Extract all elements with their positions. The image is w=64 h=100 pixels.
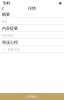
button[interactable]: 内容提要 [0,32,64,39]
staticText: ▮▮ [59,1,61,4]
staticText: 内容提要 [2,34,14,37]
button[interactable]: 概要 [0,11,64,18]
staticText: 9:41 [3,0,10,6]
staticText: 内容提要 [2,26,18,31]
button[interactable]: 简介 [0,18,64,25]
button[interactable]: 一、思路工作 [0,46,64,53]
button[interactable]: Back [0,6,6,11]
button[interactable]: 内容提要 [0,25,64,32]
button[interactable]: 立即购买 [0,93,64,100]
button[interactable]: 阅读心得 [0,39,64,46]
staticText: 简介 [2,20,8,23]
staticText: 概要 [2,12,10,17]
staticText: 阅读心得 [2,40,18,45]
staticText: 立即购买 [26,95,38,98]
staticText: 一、思路工作 [2,48,20,51]
staticText: 详情 [28,6,36,11]
